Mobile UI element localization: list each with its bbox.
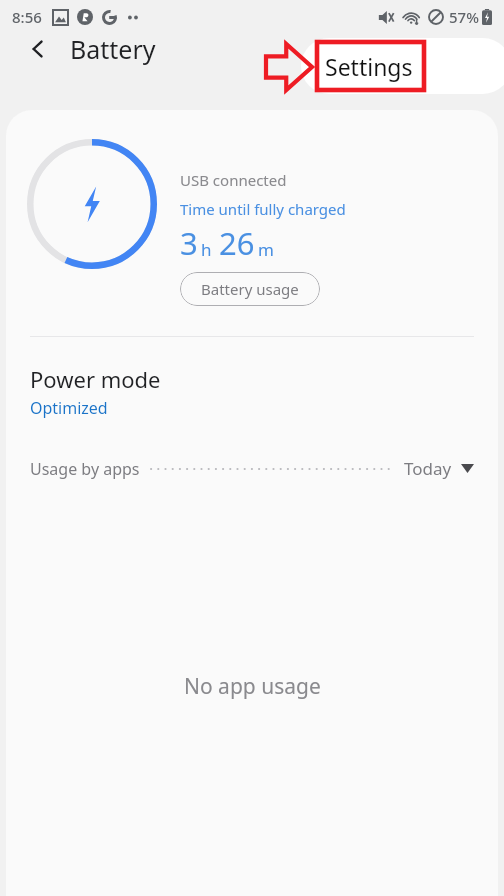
- staticText: USB connected: [180, 170, 287, 190]
- staticText: h: [201, 238, 212, 261]
- button[interactable]: Power mode: [6, 360, 498, 423]
- button[interactable]: Settings: [301, 38, 504, 94]
- staticText: Optimized: [30, 397, 108, 419]
- staticText: 57%: [449, 7, 479, 27]
- staticText: No app usage: [184, 672, 321, 701]
- staticText: m: [258, 238, 274, 261]
- staticText: 26: [219, 222, 255, 264]
- staticText: Settings: [325, 51, 413, 82]
- staticText: Today: [404, 457, 452, 480]
- staticText: Usage by apps: [30, 458, 140, 480]
- staticText: Time until fully charged: [180, 199, 346, 219]
- staticText: Battery usage: [201, 279, 299, 299]
- staticText: Power mode: [30, 364, 161, 394]
- button[interactable]: Battery usage: [180, 272, 320, 306]
- button[interactable]: Back: [14, 25, 62, 73]
- staticText: 3: [180, 222, 198, 264]
- staticText: Battery: [70, 32, 156, 66]
- button[interactable]: Today: [404, 457, 474, 480]
- staticText: 8:56: [12, 7, 42, 27]
